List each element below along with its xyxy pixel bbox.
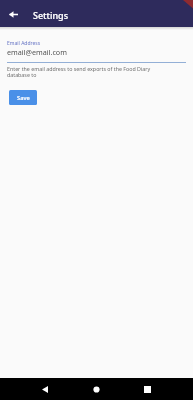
- staticText: Settings: [33, 9, 69, 21]
- button[interactable]: Home: [85, 378, 107, 400]
- staticText: Email Address: [7, 40, 41, 47]
- button[interactable]: Save: [9, 90, 37, 105]
- button[interactable]: Navigate up: [4, 5, 22, 23]
- staticText: Save: [17, 94, 30, 102]
- staticText: email@email.com: [7, 47, 67, 57]
- staticText: Enter the email address to send exports …: [7, 65, 163, 78]
- button[interactable]: Back: [34, 378, 56, 400]
- button[interactable]: Recent apps: [136, 378, 158, 400]
